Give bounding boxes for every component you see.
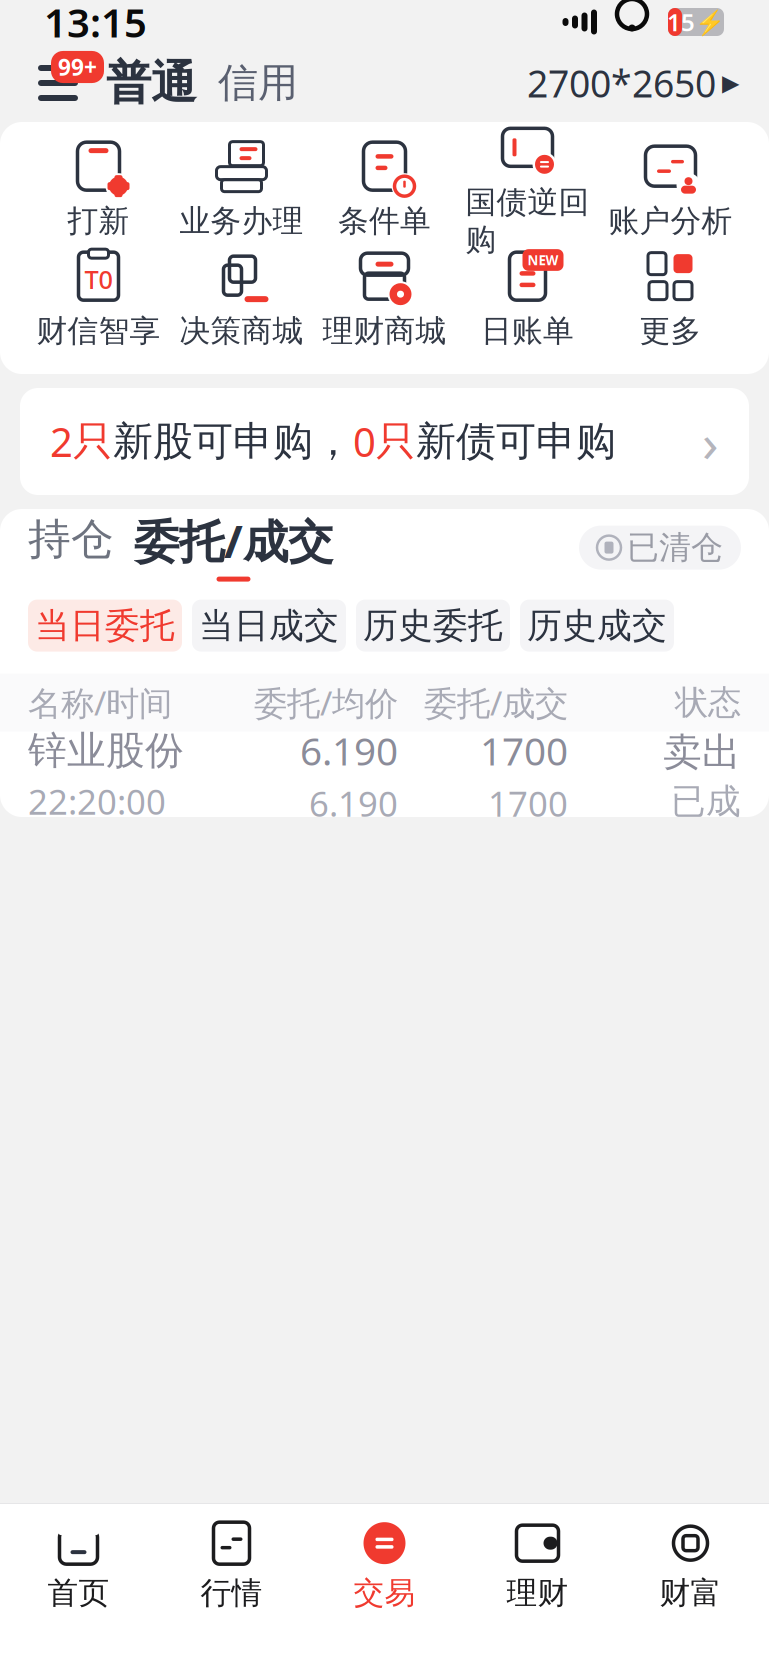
staticText: 1700 (488, 780, 568, 826)
staticText: 15⚡ (667, 6, 725, 38)
staticText: 交易 (353, 1574, 415, 1612)
button[interactable]: 首页 (2, 1518, 155, 1614)
staticText: 打新 (67, 202, 129, 240)
staticText: 财富 (659, 1574, 721, 1612)
button[interactable]: 历史委托 (356, 600, 510, 652)
staticText: 名称/时间 (28, 680, 172, 725)
button[interactable]: 理财 (461, 1518, 614, 1614)
button[interactable]: 持仓 (28, 513, 114, 582)
staticText: 委托/成交 (134, 510, 333, 571)
staticText: 条件单 (338, 202, 431, 240)
button[interactable]: 财富 (614, 1518, 767, 1614)
staticText: 0 (353, 415, 376, 468)
staticText: 6.190 (300, 725, 398, 776)
button[interactable]: 条件单 (313, 134, 456, 244)
button[interactable]: 委托/成交 (114, 510, 333, 582)
button[interactable]: 更多 (599, 244, 742, 354)
button[interactable]: NEW (456, 244, 599, 354)
staticText: 更多 (639, 312, 701, 350)
staticText: 1700 (480, 725, 568, 776)
staticText: 行情 (200, 1574, 262, 1612)
staticText: NEW (527, 251, 558, 269)
button[interactable]: 已清仓 (579, 526, 741, 582)
staticText: 理财商城 (322, 312, 446, 350)
staticText: 新债可申购 (416, 417, 616, 466)
button[interactable]: 锌业股份 (0, 732, 769, 820)
staticText: ▶ (722, 70, 739, 96)
staticText: 账户分析 (608, 202, 732, 240)
staticText: › (702, 406, 719, 477)
button[interactable]: 信用 (196, 58, 298, 107)
staticText: 只 (376, 417, 416, 466)
staticText: T0 (84, 262, 112, 296)
staticText: 状态 (675, 682, 741, 723)
staticText: 新股可申购， (113, 417, 353, 466)
button[interactable]: 2 (20, 388, 749, 495)
staticText: 国债逆回购 (465, 183, 589, 259)
button[interactable]: 账户分析 (599, 134, 742, 244)
staticText: 卖出 (663, 729, 741, 776)
staticText: 普通 (106, 55, 196, 111)
staticText: 决策商城 (179, 312, 303, 350)
staticText: 业务办理 (179, 202, 303, 240)
staticText: 理财 (506, 1574, 568, 1612)
button[interactable]: 决策商城 (170, 244, 313, 354)
staticText: 首页 (47, 1574, 109, 1612)
button[interactable]: 理财商城 (313, 244, 456, 354)
button[interactable]: 当日成交 (192, 600, 346, 652)
staticText: 锌业股份 (28, 727, 184, 774)
button[interactable]: 当日委托 (28, 600, 182, 652)
button[interactable]: 2700*2650 (527, 58, 739, 108)
staticText: 99+ (58, 52, 97, 82)
staticText: 6.190 (309, 780, 398, 826)
staticText: 已成 (671, 780, 741, 823)
staticText: 委托/成交 (424, 680, 568, 725)
staticText: 当日成交 (199, 604, 339, 647)
staticText: 2 (50, 415, 73, 468)
button[interactable]: 菜单 (30, 58, 86, 108)
button[interactable]: 打新 (27, 134, 170, 244)
button[interactable]: T0 (27, 244, 170, 354)
staticText: 13:15 (44, 0, 147, 48)
staticText: 已清仓 (627, 528, 723, 567)
staticText: 历史委托 (363, 604, 503, 647)
staticText: 财信智享 (36, 312, 160, 350)
staticText: 只 (73, 417, 113, 466)
button[interactable]: 业务办理 (170, 134, 313, 244)
staticText: 2700*2650 (527, 58, 716, 108)
staticText: 日账单 (481, 312, 574, 350)
staticText: 当日委托 (35, 604, 175, 647)
button[interactable]: 普通 (86, 55, 196, 111)
staticText: 历史成交 (527, 604, 667, 647)
button[interactable]: 国债逆回购 (456, 134, 599, 244)
button[interactable]: 交易 (308, 1518, 461, 1614)
staticText: 持仓 (28, 513, 114, 566)
button[interactable]: 行情 (155, 1518, 308, 1614)
button[interactable]: 历史成交 (520, 600, 674, 652)
staticText: 委托/均价 (254, 680, 398, 725)
staticText: 信用 (218, 58, 298, 107)
staticText: 22:20:00 (28, 778, 166, 824)
